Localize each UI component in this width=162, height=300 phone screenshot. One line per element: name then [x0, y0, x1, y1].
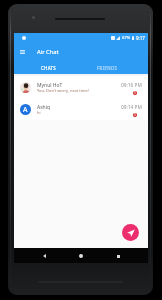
button[interactable]: Recent apps — [111, 249, 125, 263]
button[interactable]: FRIENDS — [78, 62, 136, 74]
staticText: 9:17 — [136, 35, 145, 41]
staticText: A — [23, 105, 28, 115]
button[interactable]: New message — [122, 224, 139, 241]
staticText: 67% — [122, 35, 131, 41]
staticText: 1 — [134, 91, 136, 95]
button[interactable]: CHATS — [20, 62, 78, 74]
staticText: Air Chat — [37, 48, 59, 56]
staticText: CHATS — [41, 65, 57, 71]
button[interactable]: A — [14, 98, 148, 120]
button[interactable]: Back — [37, 249, 51, 263]
button[interactable]: Menu — [16, 45, 28, 59]
staticText: 09:16 PM — [121, 82, 142, 89]
staticText: hi — [37, 110, 41, 115]
staticText: You: Don't worry, next time! — [37, 88, 89, 93]
staticText: 09:14 PM — [121, 104, 142, 111]
staticText: 1 — [134, 113, 136, 117]
button[interactable]: Mynul HoT — [14, 76, 148, 98]
staticText: Ashiq — [37, 104, 51, 111]
staticText: Mynul HoT — [37, 82, 63, 89]
button[interactable]: Home — [74, 249, 88, 263]
staticText: FRIENDS — [97, 65, 118, 71]
